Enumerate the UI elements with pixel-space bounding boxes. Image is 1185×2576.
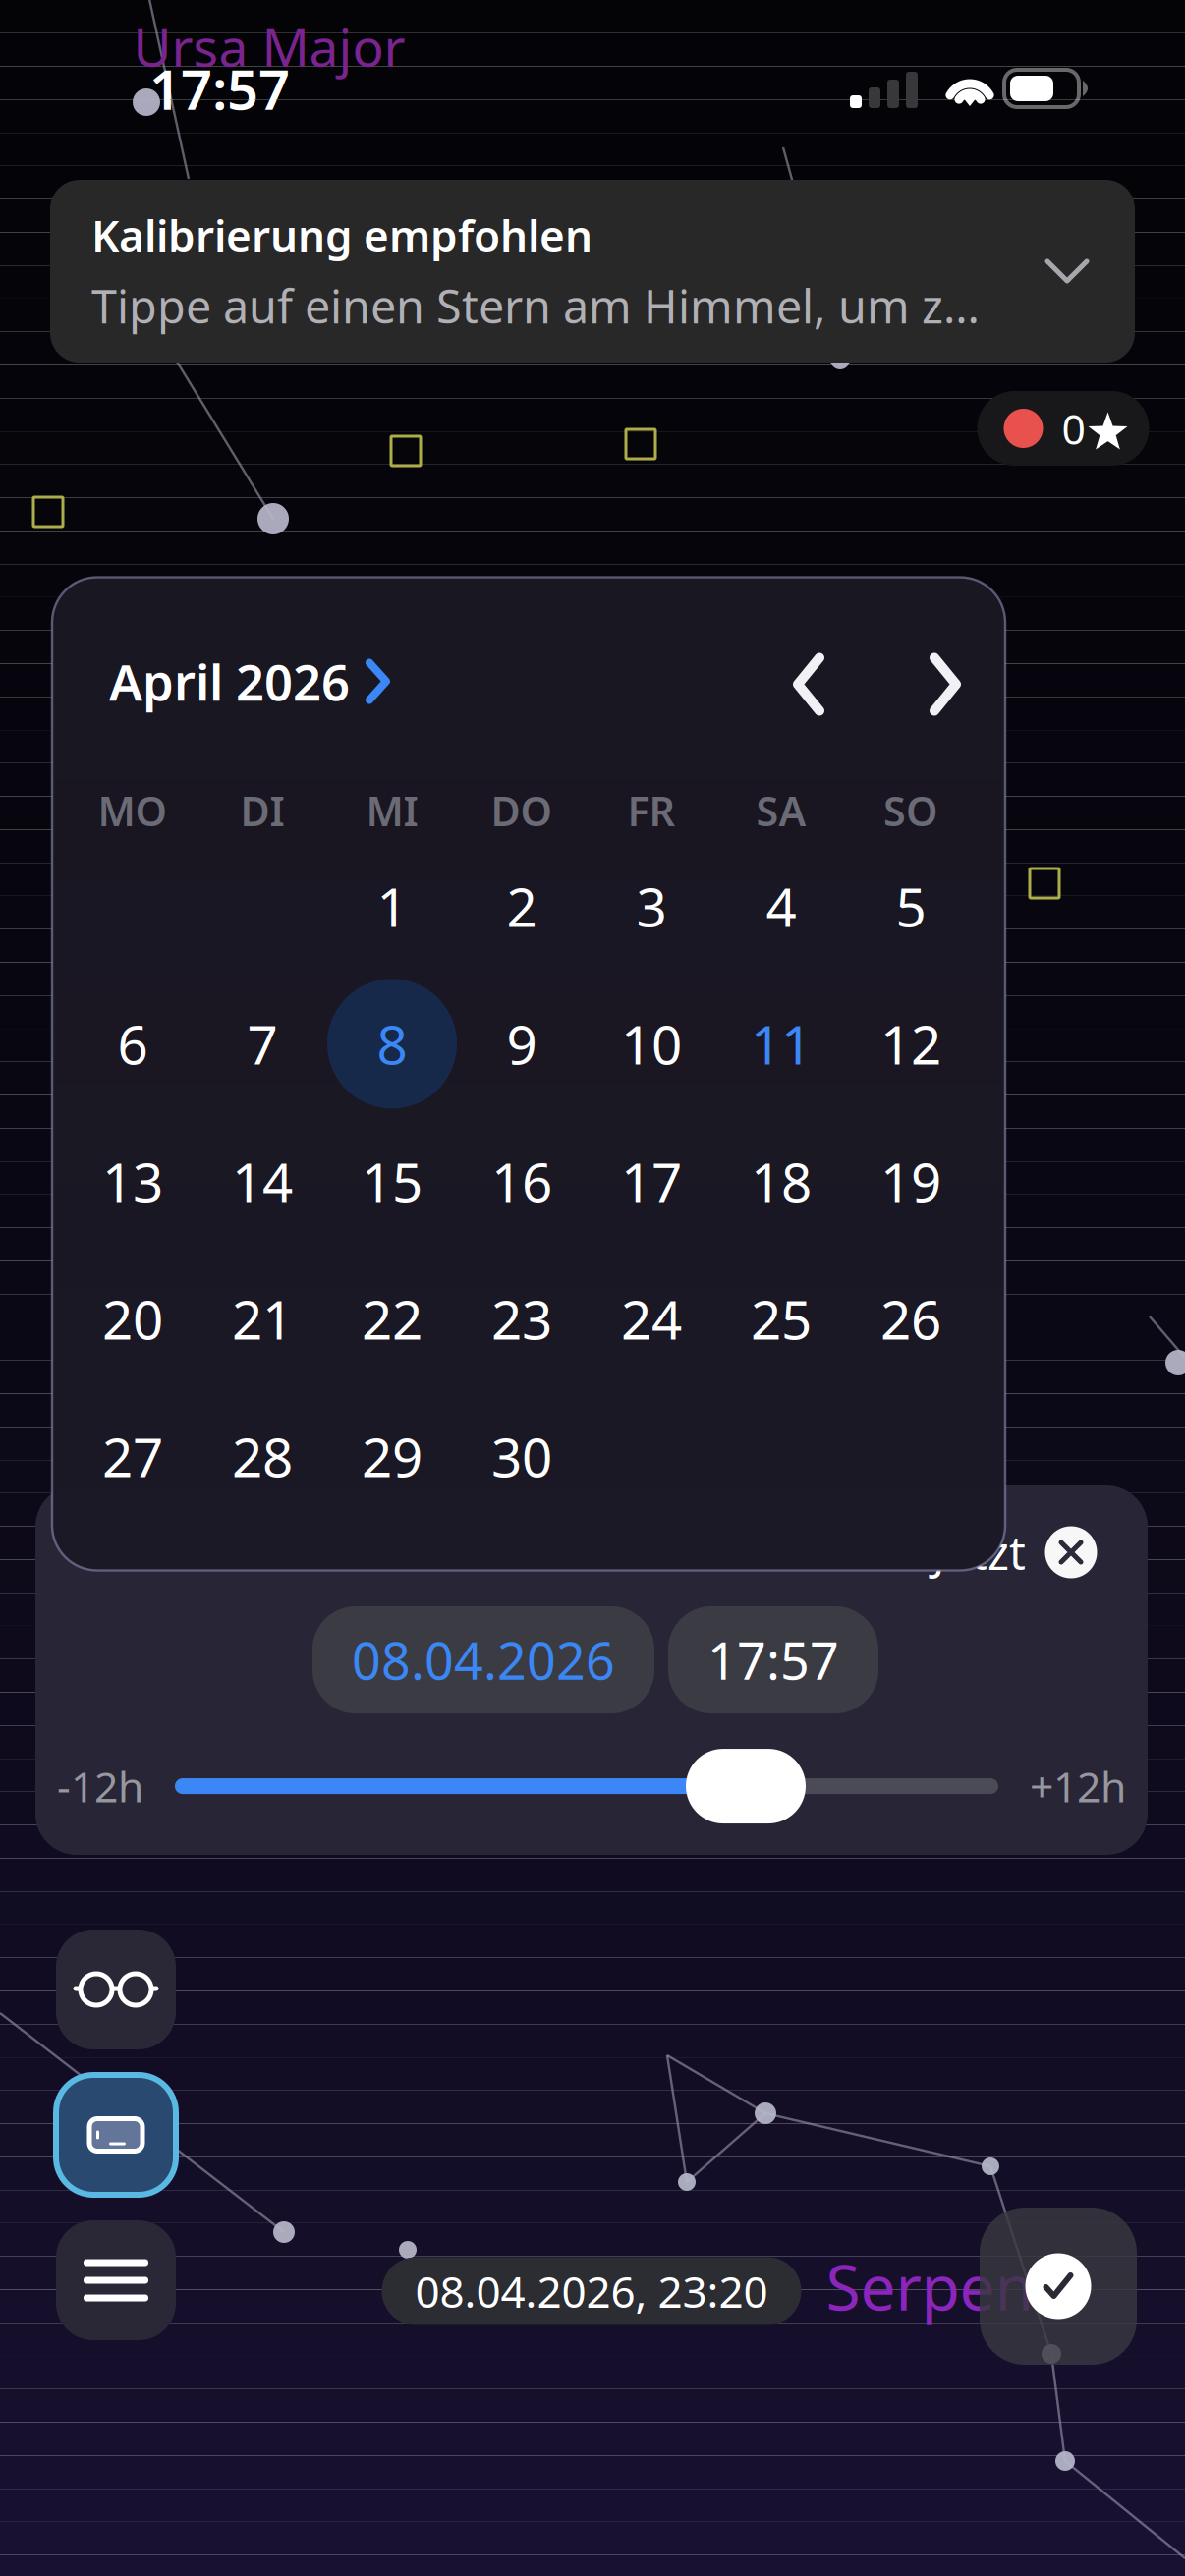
staticText: 7 bbox=[247, 1008, 278, 1079]
button[interactable]: 10 bbox=[587, 975, 716, 1113]
staticText: 0 bbox=[1062, 401, 1085, 456]
button[interactable]: 24 bbox=[587, 1250, 716, 1388]
button[interactable]: 8 bbox=[327, 975, 457, 1113]
button[interactable]: 13 bbox=[68, 1113, 197, 1250]
staticText: 29 bbox=[362, 1421, 423, 1492]
staticText: 8 bbox=[377, 1008, 407, 1079]
button[interactable]: April 2026 bbox=[109, 648, 390, 714]
staticText: 30 bbox=[491, 1421, 552, 1492]
staticText: 12 bbox=[880, 1008, 941, 1079]
staticText: Kalibrierung empfohlen bbox=[91, 206, 592, 263]
button[interactable]: 08.04.2026, 23:20 bbox=[382, 2257, 801, 2325]
button[interactable]: 6 bbox=[68, 975, 197, 1113]
button[interactable]: 22 bbox=[327, 1250, 457, 1388]
staticText: 1 bbox=[377, 871, 407, 942]
button[interactable]: Vorheriger Monat bbox=[774, 642, 906, 721]
staticText: 3 bbox=[636, 871, 667, 942]
staticText: 15 bbox=[362, 1146, 423, 1217]
button[interactable]: Nächster Monat bbox=[906, 642, 964, 721]
button[interactable]: 29 bbox=[327, 1388, 457, 1525]
staticText: 24 bbox=[621, 1283, 682, 1355]
staticText: MI bbox=[366, 784, 418, 837]
staticText: 5 bbox=[896, 871, 926, 942]
button[interactable]: 4 bbox=[716, 837, 846, 975]
staticText: 17:57 bbox=[707, 1626, 839, 1694]
button[interactable]: 1 bbox=[327, 837, 457, 975]
staticText: 18 bbox=[751, 1146, 812, 1217]
staticText: 20 bbox=[102, 1283, 163, 1355]
staticText: 11 bbox=[751, 1008, 812, 1079]
button[interactable]: 11 bbox=[716, 975, 846, 1113]
staticText: Jetzt bbox=[932, 1522, 1026, 1583]
staticText: DI bbox=[240, 784, 284, 837]
staticText: Serpens bbox=[826, 2244, 1065, 2328]
staticText: 22 bbox=[362, 1283, 423, 1355]
button[interactable]: 16 bbox=[457, 1113, 587, 1250]
button[interactable]: 17:57 bbox=[668, 1606, 878, 1714]
staticText: 17:57 bbox=[149, 52, 290, 125]
staticText: 10 bbox=[621, 1008, 682, 1079]
button[interactable]: 0 bbox=[977, 391, 1149, 466]
staticText: 4 bbox=[766, 871, 796, 942]
button[interactable]: 3 bbox=[587, 837, 716, 975]
button[interactable]: 12 bbox=[846, 975, 976, 1113]
staticText: 2 bbox=[507, 871, 537, 942]
staticText: 08.04.2026 bbox=[352, 1626, 615, 1694]
button[interactable]: 27 bbox=[68, 1388, 197, 1525]
button[interactable]: Zeitreise bbox=[56, 2075, 176, 2195]
button[interactable]: 19 bbox=[846, 1113, 976, 1250]
staticText: SO bbox=[883, 784, 938, 837]
button[interactable]: 21 bbox=[197, 1250, 327, 1388]
staticText: 26 bbox=[880, 1283, 941, 1355]
staticText: 6 bbox=[117, 1008, 148, 1079]
staticText: FR bbox=[627, 784, 676, 837]
button[interactable]: 08.04.2026 bbox=[312, 1606, 654, 1714]
staticText: 27 bbox=[102, 1421, 163, 1492]
staticText: 19 bbox=[880, 1146, 941, 1217]
button[interactable]: 9 bbox=[457, 975, 587, 1113]
staticText: April 2026 bbox=[109, 648, 350, 714]
staticText: 23 bbox=[491, 1283, 552, 1355]
staticText: 28 bbox=[232, 1421, 293, 1492]
staticText: -12h bbox=[57, 1758, 143, 1814]
button[interactable]: 28 bbox=[197, 1388, 327, 1525]
button[interactable]: 14 bbox=[197, 1113, 327, 1250]
staticText: 17 bbox=[621, 1146, 682, 1217]
staticText: 08.04.2026, 23:20 bbox=[415, 2262, 768, 2320]
staticText: Tippe auf einen Stern am Himmel, um z… bbox=[91, 275, 980, 336]
staticText: 16 bbox=[491, 1146, 552, 1217]
button[interactable]: 23 bbox=[457, 1250, 587, 1388]
staticText: Ursa Major bbox=[133, 11, 405, 81]
button[interactable]: Kalibrierung empfohlen bbox=[50, 180, 1135, 363]
staticText: 25 bbox=[751, 1283, 812, 1355]
button[interactable]: 30 bbox=[457, 1388, 587, 1525]
button[interactable]: 18 bbox=[716, 1113, 846, 1250]
staticText: 9 bbox=[507, 1008, 537, 1079]
staticText: SA bbox=[756, 784, 806, 837]
button[interactable]: 25 bbox=[716, 1250, 846, 1388]
staticText: +12h bbox=[1030, 1758, 1126, 1814]
staticText: 21 bbox=[232, 1283, 293, 1355]
button[interactable]: Schließen bbox=[1026, 1514, 1116, 1591]
staticText: 14 bbox=[232, 1146, 293, 1217]
button[interactable]: 7 bbox=[197, 975, 327, 1113]
button[interactable]: 2 bbox=[457, 837, 587, 975]
button[interactable]: Sternbilder bbox=[56, 1930, 176, 2049]
button[interactable]: 20 bbox=[68, 1250, 197, 1388]
button[interactable]: Menü bbox=[56, 2220, 176, 2340]
staticText: 13 bbox=[102, 1146, 163, 1217]
staticText: DO bbox=[491, 784, 553, 837]
button[interactable]: 15 bbox=[327, 1113, 457, 1250]
button[interactable]: 17 bbox=[587, 1113, 716, 1250]
button[interactable]: 26 bbox=[846, 1250, 976, 1388]
staticText: MO bbox=[98, 784, 168, 837]
button[interactable]: Bestätigen bbox=[980, 2208, 1137, 2365]
button[interactable]: 5 bbox=[846, 837, 976, 975]
